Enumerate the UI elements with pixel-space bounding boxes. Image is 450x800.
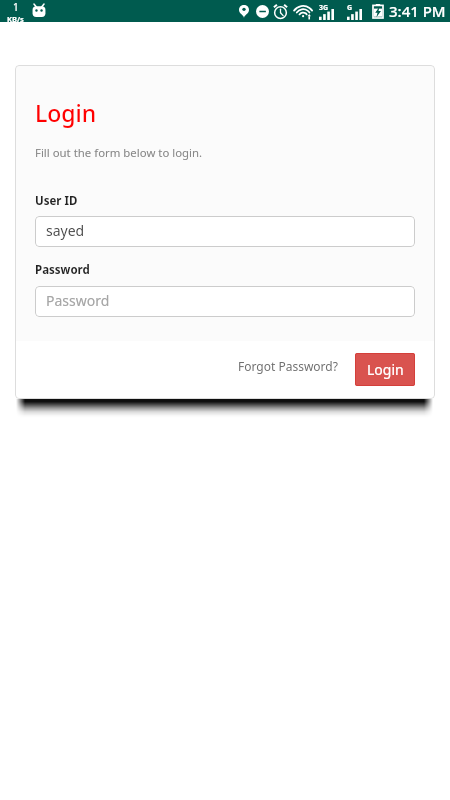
staticText: Fill out the form below to login. — [35, 145, 203, 161]
staticText: 3G — [319, 3, 329, 13]
staticText: G — [347, 3, 353, 13]
staticText: sayed — [46, 221, 85, 240]
staticText: Password — [35, 262, 90, 278]
button[interactable]: Forgot Password? — [238, 353, 338, 386]
staticText: Forgot Password? — [238, 358, 338, 374]
staticText: User ID — [35, 193, 78, 209]
staticText: 1 — [13, 0, 19, 14]
staticText: Password — [46, 291, 110, 310]
staticText: Login — [367, 360, 404, 379]
button[interactable]: sayed — [35, 216, 415, 247]
button[interactable]: Password — [35, 286, 415, 317]
staticText: Login — [35, 97, 97, 128]
staticText: 3:41 PM — [389, 1, 446, 21]
button[interactable]: Login — [355, 353, 415, 386]
staticText: KB/s — [7, 14, 24, 22]
